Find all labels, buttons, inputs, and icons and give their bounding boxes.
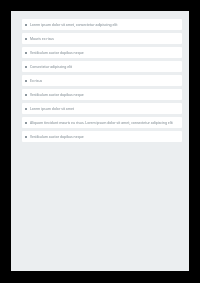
staticText: Mauris ex risus <box>30 36 54 41</box>
staticText: Ex risus <box>30 78 43 83</box>
button[interactable]: Mauris ex risus <box>22 33 182 44</box>
staticText: Aliquam tincidunt mauris eu risus. Lorem… <box>30 120 173 125</box>
staticText: Vestibulum auctor dapibus neque <box>30 50 84 55</box>
button[interactable]: Vestibulum auctor dapibus neque <box>22 131 182 142</box>
button[interactable]: Vestibulum auctor dapibus neque <box>22 47 182 58</box>
button[interactable]: Lorem ipsum dolor sit amet <box>22 103 182 114</box>
staticText: Vestibulum auctor dapibus neque <box>30 134 84 139</box>
staticText: Lorem ipsum dolor sit amet, consectetur … <box>30 22 118 27</box>
button[interactable]: Aliquam tincidunt mauris eu risus. Lorem… <box>22 117 182 128</box>
staticText: Vestibulum auctor dapibus neque <box>30 92 84 97</box>
button[interactable]: Lorem ipsum dolor sit amet, consectetur … <box>22 19 182 30</box>
staticText: Lorem ipsum dolor sit amet <box>30 106 75 111</box>
button[interactable]: Ex risus <box>22 75 182 86</box>
button[interactable]: Consectetur adipiscing elit <box>22 61 182 72</box>
staticText: Consectetur adipiscing elit <box>30 64 73 69</box>
button[interactable]: Vestibulum auctor dapibus neque <box>22 89 182 100</box>
